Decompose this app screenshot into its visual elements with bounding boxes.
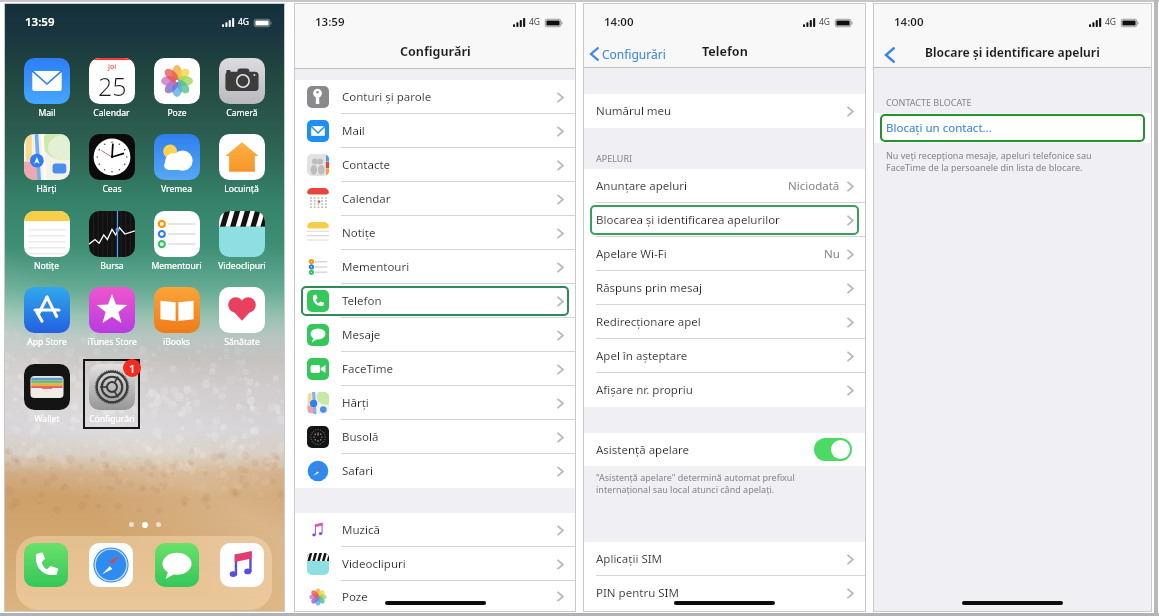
staticText: iTunes Store (87, 336, 137, 348)
button[interactable]: Apel în așteptare (583, 339, 866, 373)
button[interactable]: Videoclipuri (294, 547, 576, 581)
staticText: Telefon (702, 43, 748, 60)
button[interactable]: Mementouri (148, 206, 205, 276)
staticText: Mail (342, 123, 365, 139)
staticText: Nu (824, 246, 840, 262)
staticText: CONTACTE BLOCATE (886, 96, 972, 108)
staticText: 14:00 (604, 14, 634, 30)
button[interactable]: FaceTime (294, 352, 576, 386)
button[interactable]: Anunțare apeluri (583, 169, 866, 203)
button[interactable]: Bursa (83, 206, 140, 276)
staticText: Mail (38, 107, 56, 119)
staticText: Răspuns prin mesaj (596, 280, 702, 296)
staticText: 13:59 (25, 14, 55, 30)
button[interactable]: Ceas (83, 129, 140, 199)
button[interactable]: Notițe (294, 216, 576, 250)
staticText: Redirecționare apel (596, 314, 701, 330)
staticText: App Store (27, 336, 67, 348)
button[interactable]: Numărul meu (583, 94, 866, 128)
staticText: Mementouri (342, 259, 410, 275)
staticText: Hărți (36, 183, 57, 195)
button[interactable]: Muzică (220, 543, 264, 587)
button[interactable]: Blocați un contact... (873, 113, 1152, 143)
button[interactable]: Contacte (294, 148, 576, 182)
button[interactable]: Safari (89, 543, 133, 587)
button[interactable]: Mail (18, 53, 75, 123)
staticText: Vremea (161, 183, 192, 195)
button[interactable]: Safari (294, 454, 576, 488)
button[interactable]: Blocarea și identificarea apelurilor (583, 203, 866, 237)
staticText: Apel în așteptare (596, 348, 688, 364)
button[interactable]: Asistență apelare (583, 433, 866, 466)
button[interactable]: Răspuns prin mesaj (583, 271, 866, 305)
button[interactable]: Locuință (213, 129, 270, 199)
button[interactable]: Mail (294, 114, 576, 148)
staticText: Telefon (342, 293, 382, 309)
staticText: PIN pentru SIM (596, 585, 679, 601)
staticText: Muzică (342, 522, 380, 538)
staticText: Videoclipuri (342, 556, 406, 572)
button[interactable]: Poze (148, 53, 205, 123)
button[interactable]: Notițe (18, 206, 75, 276)
button[interactable]: Back (881, 46, 899, 64)
button[interactable]: Busolă (294, 420, 576, 454)
staticText: Calendar (342, 191, 391, 207)
button[interactable]: Afișare nr. propriu (583, 373, 866, 407)
staticText: Calendar (93, 107, 130, 119)
button[interactable]: PIN pentru SIM (583, 576, 866, 610)
button[interactable]: joi (83, 53, 140, 123)
staticText: Configurări (400, 43, 471, 60)
staticText: Busolă (342, 429, 379, 445)
button[interactable]: Configurări (590, 46, 666, 62)
button[interactable]: Videoclipuri (213, 206, 270, 276)
button[interactable]: Conturi și parole (294, 80, 576, 114)
staticText: Configurări (89, 413, 135, 425)
staticText: Cameră (226, 107, 258, 119)
button[interactable]: Sănătate (213, 282, 270, 352)
button[interactable]: Mesaje (155, 543, 199, 587)
staticText: 4G (529, 16, 541, 28)
staticText: Bursa (100, 260, 124, 272)
staticText: joi (108, 62, 117, 72)
button[interactable]: Redirecționare apel (583, 305, 866, 339)
staticText: Mementouri (151, 260, 202, 272)
button[interactable]: Mementouri (294, 250, 576, 284)
staticText: Blocarea și identificarea apelurilor (596, 212, 780, 228)
button[interactable]: App Store (18, 282, 75, 352)
button[interactable]: iTunes Store (83, 282, 140, 352)
button[interactable]: iBooks (148, 282, 205, 352)
staticText: Contacte (342, 157, 391, 173)
button[interactable]: Vremea (148, 129, 205, 199)
staticText: Blocare și identificare apeluri (925, 44, 1100, 60)
staticText: 13:59 (315, 14, 345, 30)
staticText: Conturi și parole (342, 89, 432, 105)
button[interactable]: Hărți (18, 129, 75, 199)
button[interactable]: Poze (294, 581, 576, 612)
button[interactable]: Telefon (294, 284, 576, 318)
button[interactable]: Cameră (213, 53, 270, 123)
button[interactable]: 1 (83, 359, 140, 429)
button[interactable]: Aplicații SIM (583, 542, 866, 576)
button[interactable]: Muzică (294, 513, 576, 547)
staticText: 4G (238, 16, 250, 28)
staticText: "Asistență apelare" determină automat pr… (596, 471, 795, 495)
button[interactable]: Hărți (294, 386, 576, 420)
button[interactable]: Telefon (24, 543, 68, 587)
staticText: Wallet (34, 413, 60, 425)
button[interactable]: Apelare Wi-Fi (583, 237, 866, 271)
staticText: FaceTime (342, 361, 394, 377)
staticText: Notițe (34, 260, 59, 272)
staticText: Anunțare apeluri (596, 178, 688, 194)
staticText: Mesaje (342, 327, 381, 343)
staticText: 4G (819, 16, 831, 28)
staticText: Niciodată (788, 178, 840, 194)
staticText: Notițe (342, 225, 376, 241)
staticText: Locuință (224, 183, 259, 195)
button[interactable]: Calendar (294, 182, 576, 216)
button[interactable]: Wallet (18, 359, 75, 429)
button[interactable]: Mesaje (294, 318, 576, 352)
staticText: Afișare nr. propriu (596, 382, 693, 398)
staticText: Aplicații SIM (596, 551, 663, 567)
staticText: Asistență apelare (596, 442, 690, 458)
staticText: Apelare Wi-Fi (596, 246, 667, 262)
